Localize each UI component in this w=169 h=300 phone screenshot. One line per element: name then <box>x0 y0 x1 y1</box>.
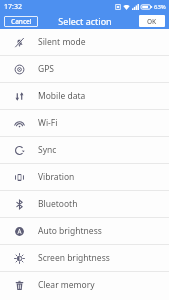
button[interactable]: Sync <box>0 137 169 163</box>
staticText: Screen brightness <box>38 252 110 264</box>
button[interactable]: Bluetooth <box>0 191 169 217</box>
button[interactable]: Vibration <box>0 164 169 190</box>
staticText: 63% <box>154 3 166 11</box>
staticText: Auto brightness <box>38 225 102 237</box>
staticText: Bluetooth <box>38 198 78 210</box>
staticText: Sync <box>38 144 57 156</box>
button[interactable]: Screen brightness <box>0 245 169 271</box>
staticText: Mobile data <box>38 90 86 102</box>
staticText: OK <box>147 17 157 26</box>
button[interactable]: Wi-Fi <box>0 110 169 136</box>
staticText: Clear memory <box>38 279 95 291</box>
button[interactable]: Cancel <box>4 16 38 27</box>
button[interactable]: Mobile data <box>0 83 169 109</box>
button[interactable]: Auto brightness <box>0 218 169 244</box>
staticText: 17:32 <box>4 2 22 12</box>
button[interactable]: OK <box>139 15 165 27</box>
staticText: Silent mode <box>38 36 86 48</box>
staticText: GPS <box>38 63 54 75</box>
button[interactable]: GPS <box>0 56 169 82</box>
staticText: Cancel <box>11 17 32 26</box>
staticText: Wi-Fi <box>38 117 58 129</box>
staticText: Vibration <box>38 171 75 183</box>
button[interactable]: Clear memory <box>0 272 169 298</box>
staticText: Select action <box>58 15 112 27</box>
button[interactable]: Silent mode <box>0 29 169 55</box>
